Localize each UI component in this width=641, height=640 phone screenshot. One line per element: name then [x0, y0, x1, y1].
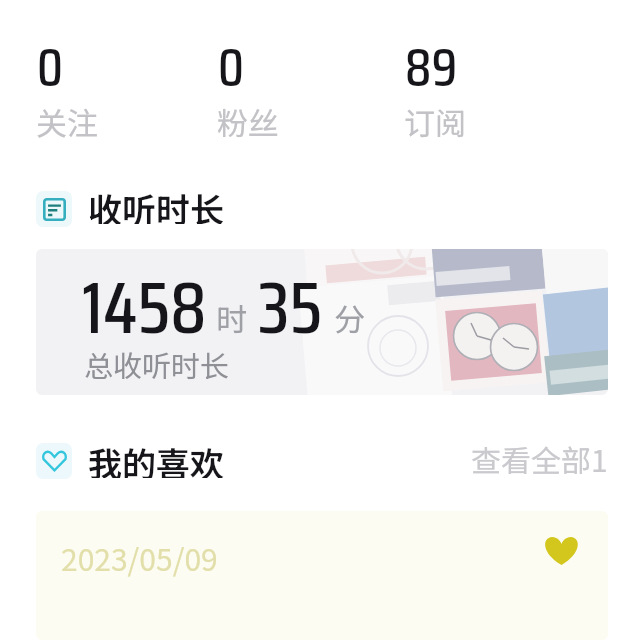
- button[interactable]: 我的喜欢: [36, 437, 336, 477]
- staticText: 89: [405, 25, 458, 110]
- button[interactable]: 0: [217, 25, 389, 133]
- other: Liked: [542, 537, 581, 565]
- button[interactable]: 查看全部1: [468, 437, 618, 477]
- button[interactable]: 1458: [36, 249, 608, 395]
- staticText: 分: [334, 295, 365, 340]
- button[interactable]: 2023/05/09: [36, 511, 608, 640]
- staticText: 0: [218, 25, 244, 110]
- staticText: 收听时长: [88, 184, 224, 224]
- staticText: 我的喜欢: [88, 438, 224, 478]
- staticText: 查看全部1: [471, 437, 608, 477]
- staticText: 35: [258, 249, 323, 365]
- staticText: 关注: [36, 99, 98, 144]
- button[interactable]: 收听时长: [36, 183, 336, 223]
- staticText: 订阅: [404, 99, 466, 144]
- staticText: 总收听时长: [84, 343, 230, 385]
- staticText: 时: [216, 295, 247, 340]
- staticText: 粉丝: [217, 99, 279, 144]
- staticText: 0: [37, 25, 63, 110]
- button[interactable]: 89: [404, 25, 576, 133]
- staticText: 2023/05/09: [61, 536, 218, 579]
- button[interactable]: 0: [36, 25, 208, 133]
- staticText: 1458: [82, 249, 207, 365]
